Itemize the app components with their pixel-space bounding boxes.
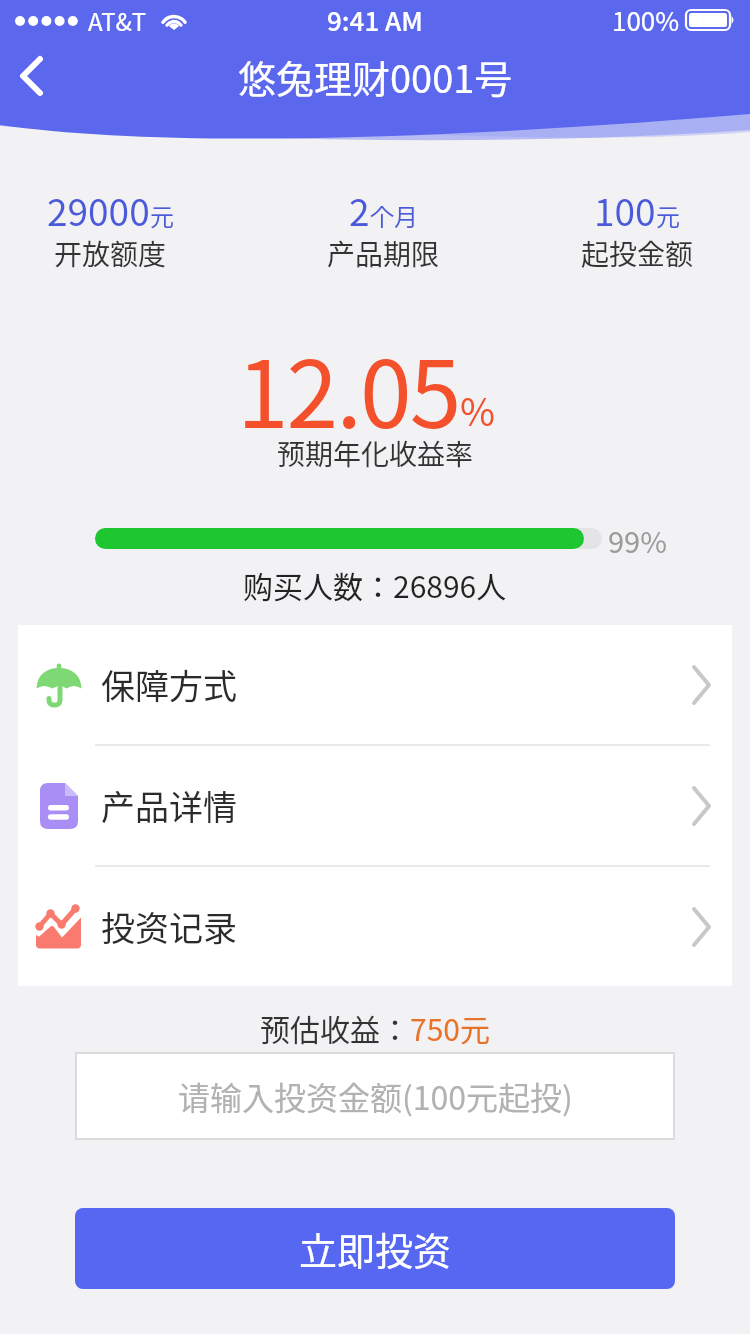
staticText: 悠兔理财0001号 <box>238 49 513 104</box>
staticText: 99% <box>608 519 667 561</box>
staticText: AT&T <box>88 3 147 38</box>
staticText: 29000 <box>47 183 150 233</box>
staticText: 12.05 <box>237 320 460 455</box>
staticText: 产品详情 <box>101 781 237 830</box>
staticText: 100 <box>594 183 656 233</box>
staticText: 9:41 AM <box>327 1 423 39</box>
staticText: 2 <box>349 183 370 233</box>
staticText: % <box>460 382 495 437</box>
staticText: 产品期限 <box>327 233 440 274</box>
staticText: 100% <box>612 1 680 39</box>
staticText: 开放额度 <box>54 233 167 274</box>
staticText: 保障方式 <box>101 660 237 709</box>
button[interactable]: 立即投资 <box>75 1208 675 1289</box>
staticText: 元 <box>656 198 680 233</box>
button[interactable]: 请输入投资金额(100元起投) <box>75 1052 675 1140</box>
button[interactable]: 投资记录 <box>18 867 732 986</box>
staticText: 请输入投资金额(100元起投) <box>178 1073 573 1119</box>
button[interactable]: 产品详情 <box>18 746 732 865</box>
staticText: 立即投资 <box>299 1221 452 1276</box>
staticText: 购买人数：26896人 <box>243 563 507 606</box>
staticText: 元 <box>150 198 174 233</box>
button[interactable]: 保障方式 <box>18 625 732 744</box>
staticText: 750元 <box>410 1006 490 1049</box>
staticText: 个月 <box>370 198 418 233</box>
staticText: 投资记录 <box>101 902 237 951</box>
button[interactable] <box>10 54 54 98</box>
staticText: 预估收益： <box>260 1006 410 1049</box>
staticText: 起投金额 <box>581 233 694 274</box>
staticText: 预期年化收益率 <box>277 433 474 474</box>
